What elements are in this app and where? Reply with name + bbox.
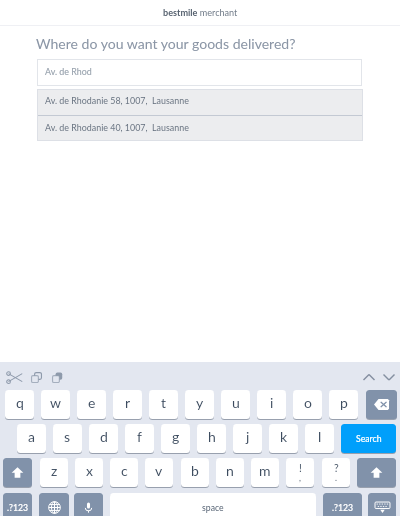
button[interactable]: k [269, 424, 298, 453]
staticText: , [299, 473, 301, 483]
button[interactable]: Av. de Rhodanie 40, 1007, Lausanne [37, 116, 363, 141]
button[interactable]: h [197, 424, 226, 453]
button[interactable]: .?123 [3, 493, 32, 516]
staticText: v [155, 462, 163, 479]
staticText: t [161, 394, 167, 411]
staticText: Search [356, 433, 382, 443]
staticText: space [202, 502, 224, 512]
staticText: h [208, 428, 216, 445]
staticText: . [335, 473, 338, 483]
staticText: e [88, 394, 96, 411]
button[interactable]: r [113, 390, 142, 419]
staticText: s [64, 428, 71, 445]
button[interactable]: Shift [3, 458, 32, 487]
button[interactable]: Backspace [366, 390, 397, 419]
staticText: g [172, 428, 180, 445]
button[interactable]: e [77, 390, 106, 419]
button[interactable]: g [161, 424, 190, 453]
staticText: o [304, 394, 312, 411]
staticText: a [28, 428, 35, 445]
staticText: x [86, 462, 93, 479]
staticText: y [196, 394, 204, 411]
button[interactable]: a [17, 424, 46, 453]
button[interactable]: c [110, 458, 138, 487]
staticText: p [340, 394, 348, 411]
button[interactable]: m [251, 458, 279, 487]
button[interactable]: Hide keyboard [368, 493, 396, 516]
button[interactable]: n [216, 458, 244, 487]
button[interactable]: Dictation [74, 493, 103, 516]
staticText: b [191, 462, 199, 479]
button[interactable]: Av. de Rhod [37, 59, 362, 86]
button[interactable]: u [221, 390, 250, 419]
staticText: i [270, 394, 274, 411]
button[interactable]: v [145, 458, 173, 487]
button[interactable]: ! [286, 458, 314, 487]
button[interactable]: Paste [49, 369, 65, 385]
button[interactable]: Change language [39, 493, 69, 516]
button[interactable]: b [181, 458, 209, 487]
button[interactable]: z [40, 458, 68, 487]
staticText: f [137, 428, 142, 445]
staticText: Where do you want your goods delivered? [36, 35, 296, 52]
button[interactable]: Shift [357, 458, 396, 487]
button[interactable]: Next field [381, 369, 397, 385]
button[interactable]: o [293, 390, 322, 419]
button[interactable]: Cut [3, 369, 25, 385]
staticText: r [125, 394, 131, 411]
button[interactable]: i [257, 390, 286, 419]
staticText: z [51, 462, 58, 479]
button[interactable]: p [329, 390, 358, 419]
button[interactable]: y [185, 390, 214, 419]
staticText: w [50, 394, 61, 411]
staticText: Av. de Rhod [45, 66, 92, 77]
button[interactable]: l [305, 424, 334, 453]
staticText: n [226, 462, 234, 479]
button[interactable]: Copy [28, 369, 44, 385]
staticText: u [232, 394, 240, 411]
staticText: .?123 [332, 502, 354, 512]
staticText: c [121, 462, 128, 479]
button[interactable]: ? [322, 458, 350, 487]
staticText: Av. de Rhodanie 58, 1007, Lausanne [45, 95, 189, 106]
button[interactable]: w [41, 390, 70, 419]
button[interactable]: Previous field [361, 369, 377, 385]
staticText: ? [334, 462, 339, 475]
button[interactable]: space [110, 493, 316, 516]
button[interactable]: s [53, 424, 82, 453]
staticText: .?123 [7, 502, 29, 512]
button[interactable]: Av. de Rhodanie 58, 1007, Lausanne [37, 89, 363, 114]
button[interactable]: f [125, 424, 154, 453]
staticText: ! [299, 462, 302, 475]
staticText: Av. de Rhodanie 40, 1007, Lausanne [45, 122, 189, 133]
button[interactable]: Search [341, 424, 396, 453]
button[interactable]: j [233, 424, 262, 453]
button[interactable]: q [5, 390, 34, 419]
staticText: q [16, 394, 24, 411]
button[interactable]: x [75, 458, 103, 487]
staticText: bestmile merchant [163, 7, 238, 18]
staticText: k [280, 428, 288, 445]
staticText: m [259, 462, 271, 479]
staticText: j [246, 428, 250, 445]
button[interactable]: t [149, 390, 178, 419]
button[interactable]: d [89, 424, 118, 453]
button[interactable]: .?123 [323, 493, 362, 516]
staticText: d [100, 428, 108, 445]
staticText: l [318, 428, 322, 445]
